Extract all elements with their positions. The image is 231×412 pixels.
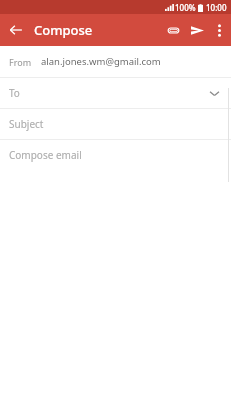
- staticText: From: [9, 56, 32, 68]
- button[interactable]: To: [0, 78, 231, 108]
- button[interactable]: Back: [4, 18, 28, 42]
- button[interactable]: From: [0, 46, 231, 77]
- staticText: 100%: [175, 2, 196, 13]
- button[interactable]: Expand recipients: [205, 84, 223, 102]
- button[interactable]: Compose email: [0, 140, 231, 170]
- staticText: 10:00: [206, 2, 227, 13]
- staticText: alan.jones.wm@gmail.com: [41, 55, 161, 68]
- button[interactable]: Subject: [0, 109, 231, 139]
- button[interactable]: Attach file: [161, 18, 185, 42]
- staticText: Compose email: [9, 148, 82, 162]
- staticText: Subject: [9, 117, 44, 131]
- staticText: To: [9, 86, 205, 100]
- staticText: Compose: [34, 21, 93, 39]
- button[interactable]: More options: [209, 20, 229, 40]
- button[interactable]: Send: [185, 18, 209, 42]
